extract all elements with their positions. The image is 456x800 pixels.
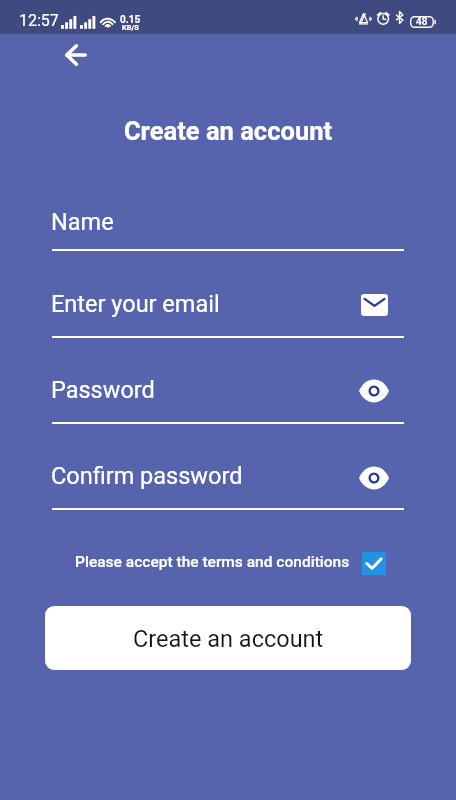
other: Accept terms and conditions <box>362 552 386 575</box>
staticText: Password <box>51 376 155 404</box>
button[interactable] <box>52 374 404 424</box>
button[interactable]: Create an account <box>45 606 411 670</box>
button[interactable]: Email <box>353 284 395 326</box>
button[interactable]: Back <box>51 30 100 79</box>
button[interactable]: Show password <box>353 370 395 412</box>
staticText: Please accept the terms and conditions <box>75 553 350 571</box>
button[interactable] <box>52 460 404 510</box>
staticText: KB/S <box>122 23 139 32</box>
staticText: Create an account <box>133 625 324 653</box>
button[interactable] <box>52 201 404 251</box>
staticText: Enter your email <box>51 290 220 318</box>
button[interactable] <box>52 288 404 338</box>
button[interactable]: Please accept the terms and conditions <box>75 547 386 574</box>
staticText: Create an account <box>0 116 456 146</box>
staticText: 12:57 <box>19 11 59 30</box>
staticText: 48 <box>416 16 428 28</box>
button[interactable]: Show password <box>353 457 395 499</box>
staticText: 0.15 <box>120 14 141 26</box>
staticText: Confirm password <box>51 462 243 490</box>
staticText: Name <box>51 208 114 236</box>
